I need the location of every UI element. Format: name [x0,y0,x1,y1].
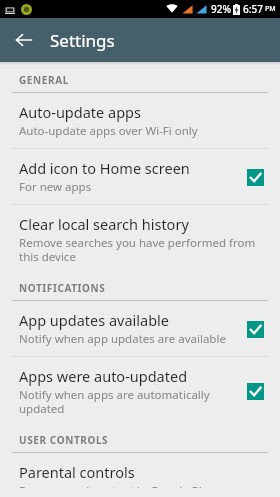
button[interactable]: Add icon to Home screen [0,149,280,205]
staticText: Auto-update apps over Wi-Fi only [19,123,198,139]
staticText: Settings [50,29,115,52]
button[interactable]: Toggle App updates available [242,316,268,342]
staticText: Apps were auto-updated [19,366,188,386]
button[interactable]: Apps were auto-updated [0,357,280,425]
staticText: For new apps [19,179,92,195]
staticText: Parental controls [19,462,135,482]
staticText: PM [265,4,276,14]
staticText: 92% [211,2,231,16]
staticText: 6:57 [243,2,263,16]
staticText: USER CONTROLS [19,433,109,447]
button[interactable]: Clear local search history [0,205,280,273]
staticText: For apps and content in Google Play [19,483,214,488]
staticText: Notify when app updates are available [19,331,226,347]
staticText: GENERAL [19,73,69,87]
staticText: Notify when apps are automatically updat… [19,387,234,416]
button[interactable]: Auto-update apps [0,93,280,149]
button[interactable]: Back [8,24,40,56]
staticText: Remove searches you have performed from … [19,235,268,264]
staticText: Clear local search history [19,214,189,234]
button[interactable]: Parental controls [0,453,280,497]
button[interactable]: App updates available [0,301,280,357]
staticText: Auto-update apps [19,102,141,122]
button[interactable]: Toggle Add icon to Home screen [242,164,268,190]
staticText: Add icon to Home screen [19,158,190,178]
button[interactable]: Toggle Apps were auto-updated [242,378,268,404]
staticText: NOTIFICATIONS [19,281,106,295]
staticText: App updates available [19,310,170,330]
